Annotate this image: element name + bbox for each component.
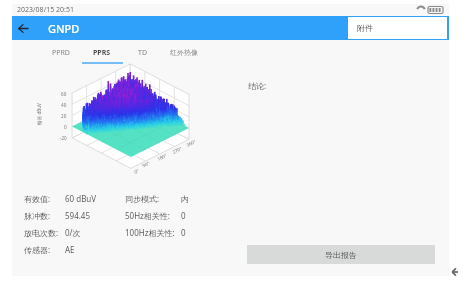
staticText: 0/次 [65, 227, 81, 238]
button[interactable]: 导出报告 [247, 245, 435, 264]
staticText: 90° [141, 159, 151, 168]
staticText: 内 [181, 194, 189, 204]
button[interactable]: 红外热像 [163, 40, 204, 65]
staticText: 2023/08/15 20:51 [17, 5, 74, 15]
staticText: 60 [61, 91, 67, 97]
staticText: 导出报告 [325, 250, 357, 260]
button[interactable]: PPRD [41, 40, 81, 65]
button[interactable]: Back [12, 16, 34, 40]
staticText: 180° [156, 152, 168, 162]
staticText: 0 [64, 124, 67, 130]
staticText: 红外热像 [170, 48, 198, 57]
staticText: 594.45 [65, 210, 91, 221]
staticText: 有效值: [24, 193, 51, 204]
staticText: 同步模式: [125, 193, 160, 204]
staticText: 60 dBuV [65, 193, 97, 204]
button[interactable]: 附件 [348, 17, 447, 39]
staticText: PPRS [93, 48, 111, 58]
staticText: 0° [133, 167, 140, 175]
staticText: 20 [61, 113, 67, 119]
staticText: 40 [61, 102, 67, 108]
staticText: 放电次数: [24, 227, 59, 238]
staticText: 270° [171, 145, 183, 155]
staticText: -20 [60, 135, 67, 141]
staticText: 0 [181, 210, 186, 221]
staticText: 0 [181, 227, 186, 238]
button[interactable]: TD [122, 40, 163, 65]
staticText: 附件 [357, 23, 373, 33]
button[interactable]: PPRS [81, 40, 122, 65]
staticText: 幅值 dBuV [36, 103, 42, 125]
staticText: 50Hz相关性: [125, 210, 170, 221]
staticText: GNPD [48, 21, 80, 36]
staticText: 传感器: [24, 244, 51, 255]
staticText: 脉冲数: [24, 210, 51, 221]
staticText: TD [138, 48, 148, 58]
staticText: 100Hz相关性: [125, 227, 175, 238]
staticText: 360° [185, 138, 197, 148]
staticText: AE [65, 244, 75, 255]
staticText: 结论: [248, 80, 267, 91]
staticText: PPRD [52, 48, 70, 58]
